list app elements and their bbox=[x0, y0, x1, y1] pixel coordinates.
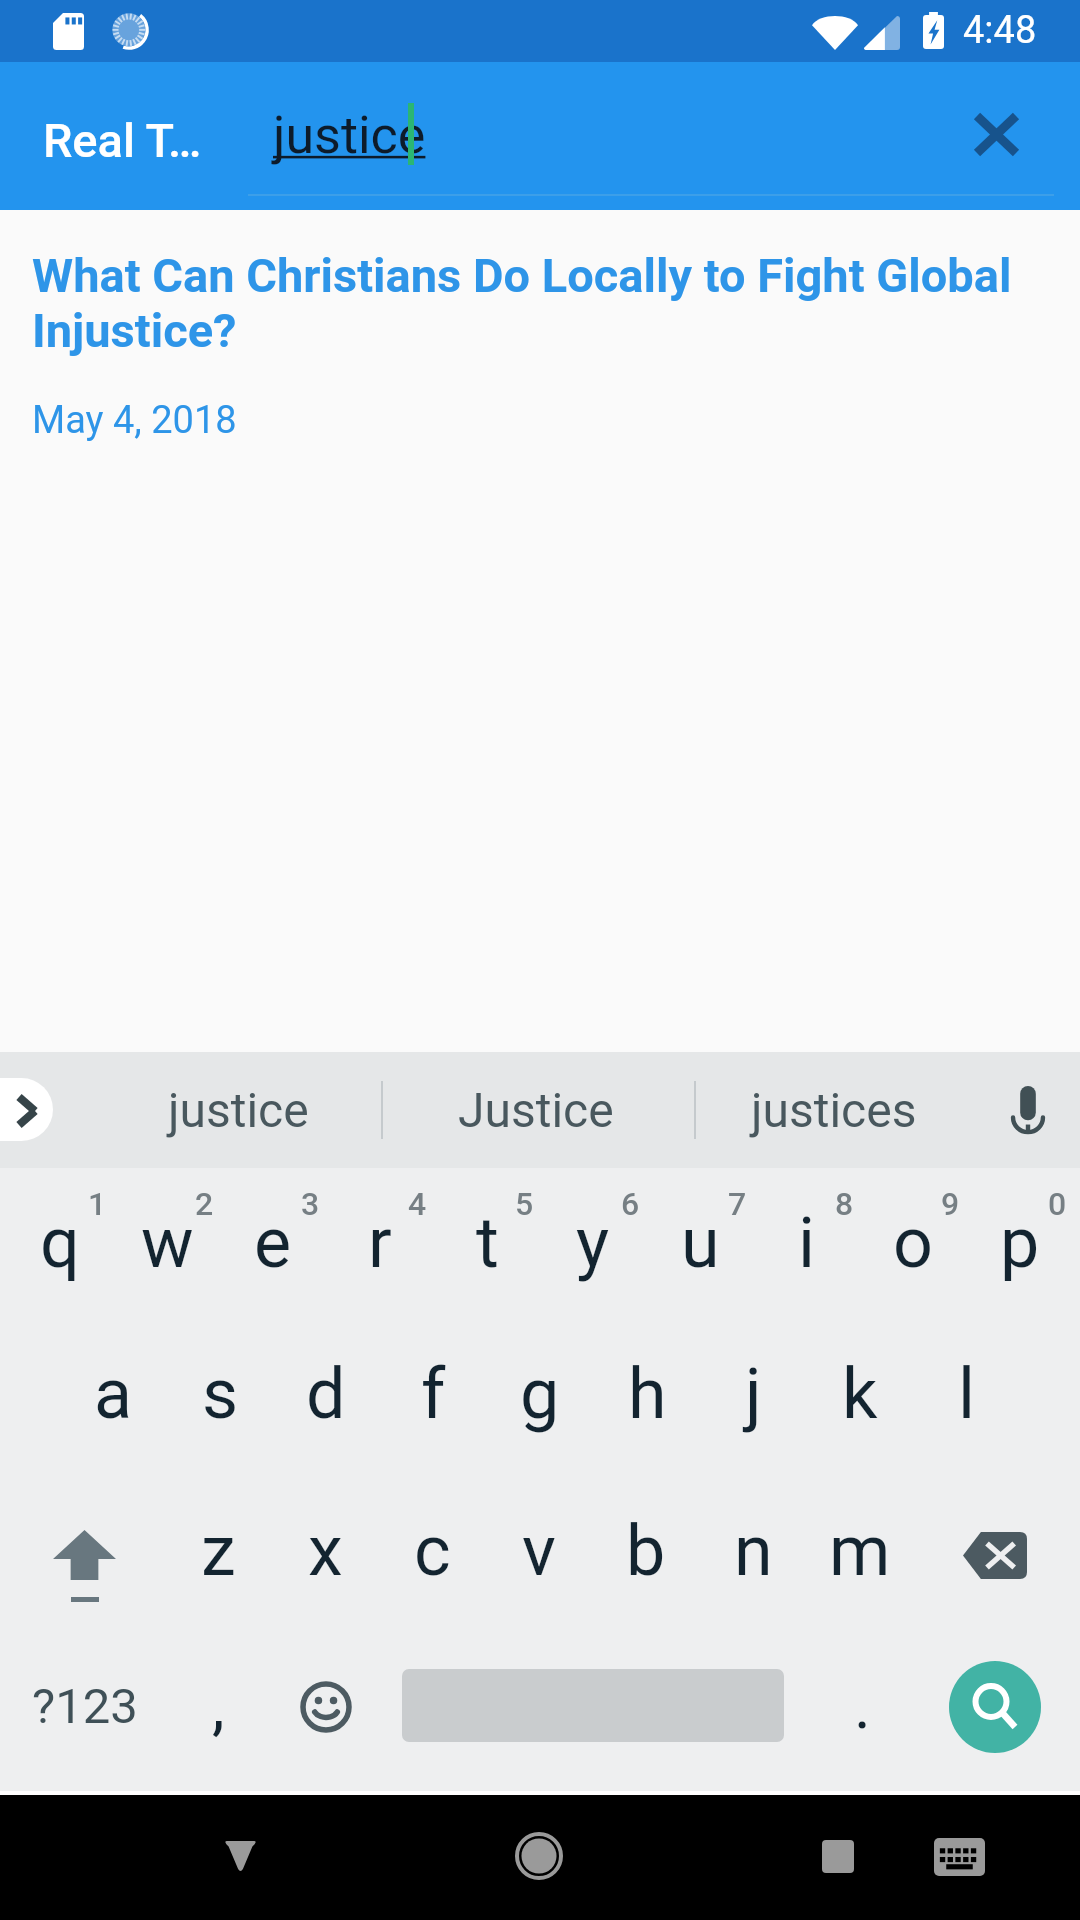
staticText: r bbox=[368, 1202, 392, 1284]
button[interactable]: n bbox=[700, 1473, 806, 1629]
button[interactable]: a bbox=[60, 1316, 166, 1472]
staticText: 9 bbox=[941, 1185, 960, 1223]
button[interactable]: u bbox=[647, 1165, 753, 1321]
button[interactable]: Recent apps bbox=[790, 1795, 886, 1920]
staticText: y bbox=[576, 1202, 610, 1284]
button[interactable]: b bbox=[593, 1473, 699, 1629]
staticText: ?123 bbox=[32, 1678, 138, 1735]
button[interactable]: Voice input bbox=[985, 1052, 1071, 1168]
button[interactable]: Back bbox=[192, 1795, 288, 1920]
staticText: c bbox=[414, 1510, 451, 1592]
button[interactable]: Search bbox=[920, 1628, 1070, 1784]
staticText: e bbox=[254, 1202, 292, 1284]
staticText: Real T… bbox=[43, 113, 202, 168]
button[interactable]: k bbox=[807, 1316, 913, 1472]
button[interactable]: Justice bbox=[386, 1052, 686, 1168]
staticText: k bbox=[842, 1353, 878, 1435]
staticText: a bbox=[94, 1353, 133, 1435]
staticText: w bbox=[141, 1202, 194, 1284]
button[interactable]: i bbox=[754, 1165, 860, 1321]
button[interactable]: More suggestions bbox=[0, 1078, 53, 1141]
staticText: l bbox=[958, 1353, 976, 1435]
staticText: 4 bbox=[408, 1185, 427, 1223]
staticText: , bbox=[212, 1669, 225, 1744]
button[interactable]: m bbox=[807, 1473, 913, 1629]
staticText: justice bbox=[273, 105, 426, 166]
button[interactable]: g bbox=[487, 1316, 593, 1472]
staticText: 2 bbox=[195, 1185, 214, 1223]
staticText: j bbox=[745, 1353, 762, 1435]
button[interactable]: x bbox=[272, 1473, 378, 1629]
button[interactable]: c bbox=[379, 1473, 485, 1629]
staticText: . bbox=[854, 1669, 871, 1744]
staticText: 0 bbox=[1048, 1185, 1067, 1223]
button[interactable]: Change keyboard bbox=[912, 1795, 1008, 1920]
button[interactable]: , bbox=[165, 1628, 271, 1784]
staticText: h bbox=[628, 1353, 667, 1435]
button[interactable]: What Can Christians Do Locally to Fight … bbox=[0, 210, 1080, 470]
staticText: 7 bbox=[728, 1185, 747, 1223]
button[interactable]: Emoji bbox=[272, 1628, 378, 1784]
button[interactable]: f bbox=[380, 1316, 486, 1472]
button[interactable]: ?123 bbox=[10, 1628, 160, 1784]
button[interactable]: e bbox=[220, 1165, 326, 1321]
staticText: May 4, 2018 bbox=[32, 398, 237, 443]
staticText: n bbox=[734, 1510, 773, 1592]
button[interactable]: z bbox=[165, 1473, 271, 1629]
button[interactable]: justice bbox=[88, 1052, 388, 1168]
button[interactable]: Backspace bbox=[920, 1472, 1070, 1628]
staticText: u bbox=[681, 1202, 720, 1284]
button[interactable]: h bbox=[594, 1316, 700, 1472]
staticText: g bbox=[520, 1353, 560, 1435]
button[interactable]: r bbox=[327, 1165, 433, 1321]
staticText: 1 bbox=[88, 1185, 107, 1223]
button[interactable]: j bbox=[700, 1316, 806, 1472]
button[interactable]: w bbox=[114, 1165, 220, 1321]
button[interactable]: Shift bbox=[10, 1472, 160, 1628]
button[interactable]: t bbox=[434, 1165, 540, 1321]
staticText: Justice bbox=[458, 1082, 614, 1138]
button[interactable]: s bbox=[167, 1316, 273, 1472]
staticText: x bbox=[308, 1510, 343, 1592]
staticText: 4:48 bbox=[963, 8, 1037, 53]
staticText: justices bbox=[751, 1082, 917, 1138]
button[interactable]: v bbox=[486, 1473, 592, 1629]
staticText: s bbox=[202, 1353, 239, 1435]
staticText: b bbox=[626, 1510, 666, 1592]
button[interactable]: o bbox=[860, 1165, 966, 1321]
staticText: justice bbox=[168, 1082, 309, 1138]
button[interactable]: y bbox=[540, 1165, 646, 1321]
button[interactable]: l bbox=[914, 1316, 1020, 1472]
button[interactable]: . bbox=[809, 1628, 915, 1784]
staticText: m bbox=[829, 1510, 891, 1592]
staticText: 5 bbox=[515, 1185, 534, 1223]
staticText: p bbox=[1000, 1202, 1040, 1284]
button[interactable]: Clear search bbox=[948, 86, 1044, 182]
staticText: 3 bbox=[301, 1185, 320, 1223]
button[interactable] bbox=[402, 1628, 784, 1784]
staticText: i bbox=[798, 1202, 816, 1284]
staticText: 8 bbox=[835, 1185, 854, 1223]
button[interactable]: p bbox=[967, 1165, 1073, 1321]
staticText: f bbox=[421, 1353, 446, 1435]
button[interactable]: justices bbox=[684, 1052, 984, 1168]
staticText: z bbox=[201, 1510, 236, 1592]
button[interactable]: q bbox=[7, 1165, 113, 1321]
staticText: t bbox=[476, 1202, 499, 1284]
button[interactable]: d bbox=[273, 1316, 379, 1472]
button[interactable]: Home bbox=[491, 1795, 587, 1920]
staticText: v bbox=[522, 1510, 556, 1592]
staticText: What Can Christians Do Locally to Fight … bbox=[32, 248, 1040, 358]
staticText: o bbox=[893, 1202, 933, 1284]
staticText: d bbox=[306, 1353, 346, 1435]
staticText: 6 bbox=[621, 1185, 640, 1223]
staticText: q bbox=[40, 1202, 80, 1284]
